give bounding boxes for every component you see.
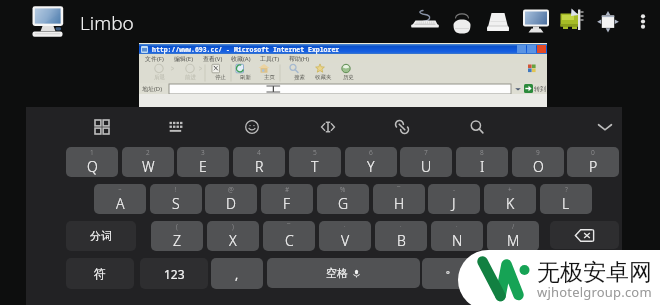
staticText: V xyxy=(341,231,350,250)
button[interactable]: 工具(T) xyxy=(260,55,279,63)
button[interactable]: 编辑(E) xyxy=(174,55,193,63)
staticText: U xyxy=(421,157,432,176)
button[interactable]: Hard disk xyxy=(481,3,515,40)
staticText: J xyxy=(452,194,456,213)
button[interactable]: Limbo xyxy=(30,4,66,40)
button[interactable]: % xyxy=(317,184,369,214)
staticText: T xyxy=(311,157,319,176)
staticText: 符 xyxy=(94,266,106,281)
staticText: 后退 xyxy=(154,74,165,81)
staticText: · xyxy=(400,222,402,231)
staticText: 7 xyxy=(424,148,428,157)
staticText: 9 xyxy=(536,148,540,157)
button[interactable]: 符 xyxy=(66,258,134,289)
button[interactable]: Enter xyxy=(477,258,549,288)
button[interactable]: Search xyxy=(458,113,496,140)
button[interactable]: 转到 xyxy=(524,84,546,93)
button[interactable]: 5 xyxy=(289,147,341,177)
button[interactable]: ° xyxy=(422,258,474,289)
button[interactable]: , xyxy=(211,258,263,289)
button[interactable]: ¯ xyxy=(263,221,315,251)
button[interactable]: ) xyxy=(207,221,259,251)
button[interactable]: Backspace xyxy=(550,221,619,249)
staticText: P xyxy=(589,157,598,176)
button[interactable]: 收藏(A) xyxy=(231,55,251,63)
staticText: ° xyxy=(446,268,450,280)
staticText: 历史 xyxy=(343,74,354,81)
button[interactable]: Keyboard xyxy=(408,3,442,40)
button[interactable]: History dropdown xyxy=(513,84,523,94)
button[interactable]: Emoji xyxy=(233,113,271,140)
button[interactable]: Move cursor xyxy=(309,113,347,140)
staticText: @ xyxy=(228,185,234,194)
button[interactable]: 文件(F) xyxy=(145,55,164,63)
staticText: ) xyxy=(232,222,234,231)
button[interactable]: Clipboard xyxy=(383,113,421,140)
staticText: ¯ xyxy=(287,222,291,231)
staticText: wjhotelgroup.com xyxy=(537,283,652,301)
button[interactable]: More options xyxy=(630,3,656,40)
button[interactable]: / xyxy=(487,221,539,251)
button[interactable]: ( xyxy=(151,221,203,251)
staticText: D xyxy=(226,194,236,213)
button[interactable]: Hide keyboard xyxy=(586,113,624,140)
button[interactable]: · xyxy=(431,221,483,251)
button[interactable]: 3 xyxy=(177,147,229,177)
staticText: 前进 xyxy=(185,74,196,81)
button[interactable]: + xyxy=(484,184,536,214)
staticText: H xyxy=(394,194,405,213)
button[interactable]: ! xyxy=(150,184,202,214)
staticText: # xyxy=(285,185,290,194)
button[interactable]: 2 xyxy=(122,147,174,177)
staticText: I xyxy=(480,157,485,176)
staticText: 6 xyxy=(369,148,373,157)
button[interactable]: # xyxy=(261,184,313,214)
staticText: 主页 xyxy=(264,74,275,81)
button[interactable]: 0 xyxy=(567,147,619,177)
staticText: A xyxy=(116,194,125,213)
staticText: S xyxy=(172,194,180,213)
staticText: 刷新 xyxy=(240,74,251,81)
button[interactable]: Keyboard layouts xyxy=(83,113,121,140)
staticText: 8 xyxy=(480,148,484,157)
button[interactable]: 空格 xyxy=(267,258,420,288)
button[interactable]: Keyboard type xyxy=(157,113,195,140)
button[interactable]: - xyxy=(428,184,480,214)
staticText: ~ xyxy=(118,185,122,194)
button[interactable]: 分词 xyxy=(66,221,136,251)
staticText: 转到 xyxy=(534,85,546,93)
button[interactable]: 6 xyxy=(345,147,397,177)
button[interactable]: 123 xyxy=(140,258,208,289)
button[interactable]: 帮助(H) xyxy=(289,55,310,63)
staticText: K xyxy=(506,194,515,213)
button[interactable]: 9 xyxy=(512,147,564,177)
button[interactable]: 查看(V) xyxy=(203,55,223,63)
button[interactable]: 8 xyxy=(456,147,508,177)
button[interactable]: ¯ xyxy=(373,184,425,214)
staticText: O xyxy=(533,157,544,176)
button[interactable]: 1 xyxy=(66,147,118,177)
staticText: X xyxy=(229,231,237,250)
staticText: W xyxy=(142,157,155,176)
button[interactable]: Mouse xyxy=(445,3,479,40)
staticText: ¯ xyxy=(397,185,401,194)
button[interactable]: ? xyxy=(540,184,592,214)
button[interactable]: · xyxy=(319,221,371,251)
button[interactable]: Monitor xyxy=(519,3,553,40)
button[interactable]: @ xyxy=(205,184,257,214)
button[interactable]: Network xyxy=(555,3,589,40)
staticText: E xyxy=(199,157,207,176)
button[interactable]: ~ xyxy=(94,184,146,214)
staticText: C xyxy=(285,231,294,250)
button[interactable]: · xyxy=(375,221,427,251)
staticText: + xyxy=(508,185,512,194)
button[interactable]: 4 xyxy=(233,147,285,177)
staticText: · xyxy=(344,222,346,231)
button[interactable]: D-pad xyxy=(591,3,625,40)
button[interactable]: 7 xyxy=(400,147,452,177)
staticText: 123 xyxy=(164,266,185,282)
staticText: Q xyxy=(87,157,98,176)
